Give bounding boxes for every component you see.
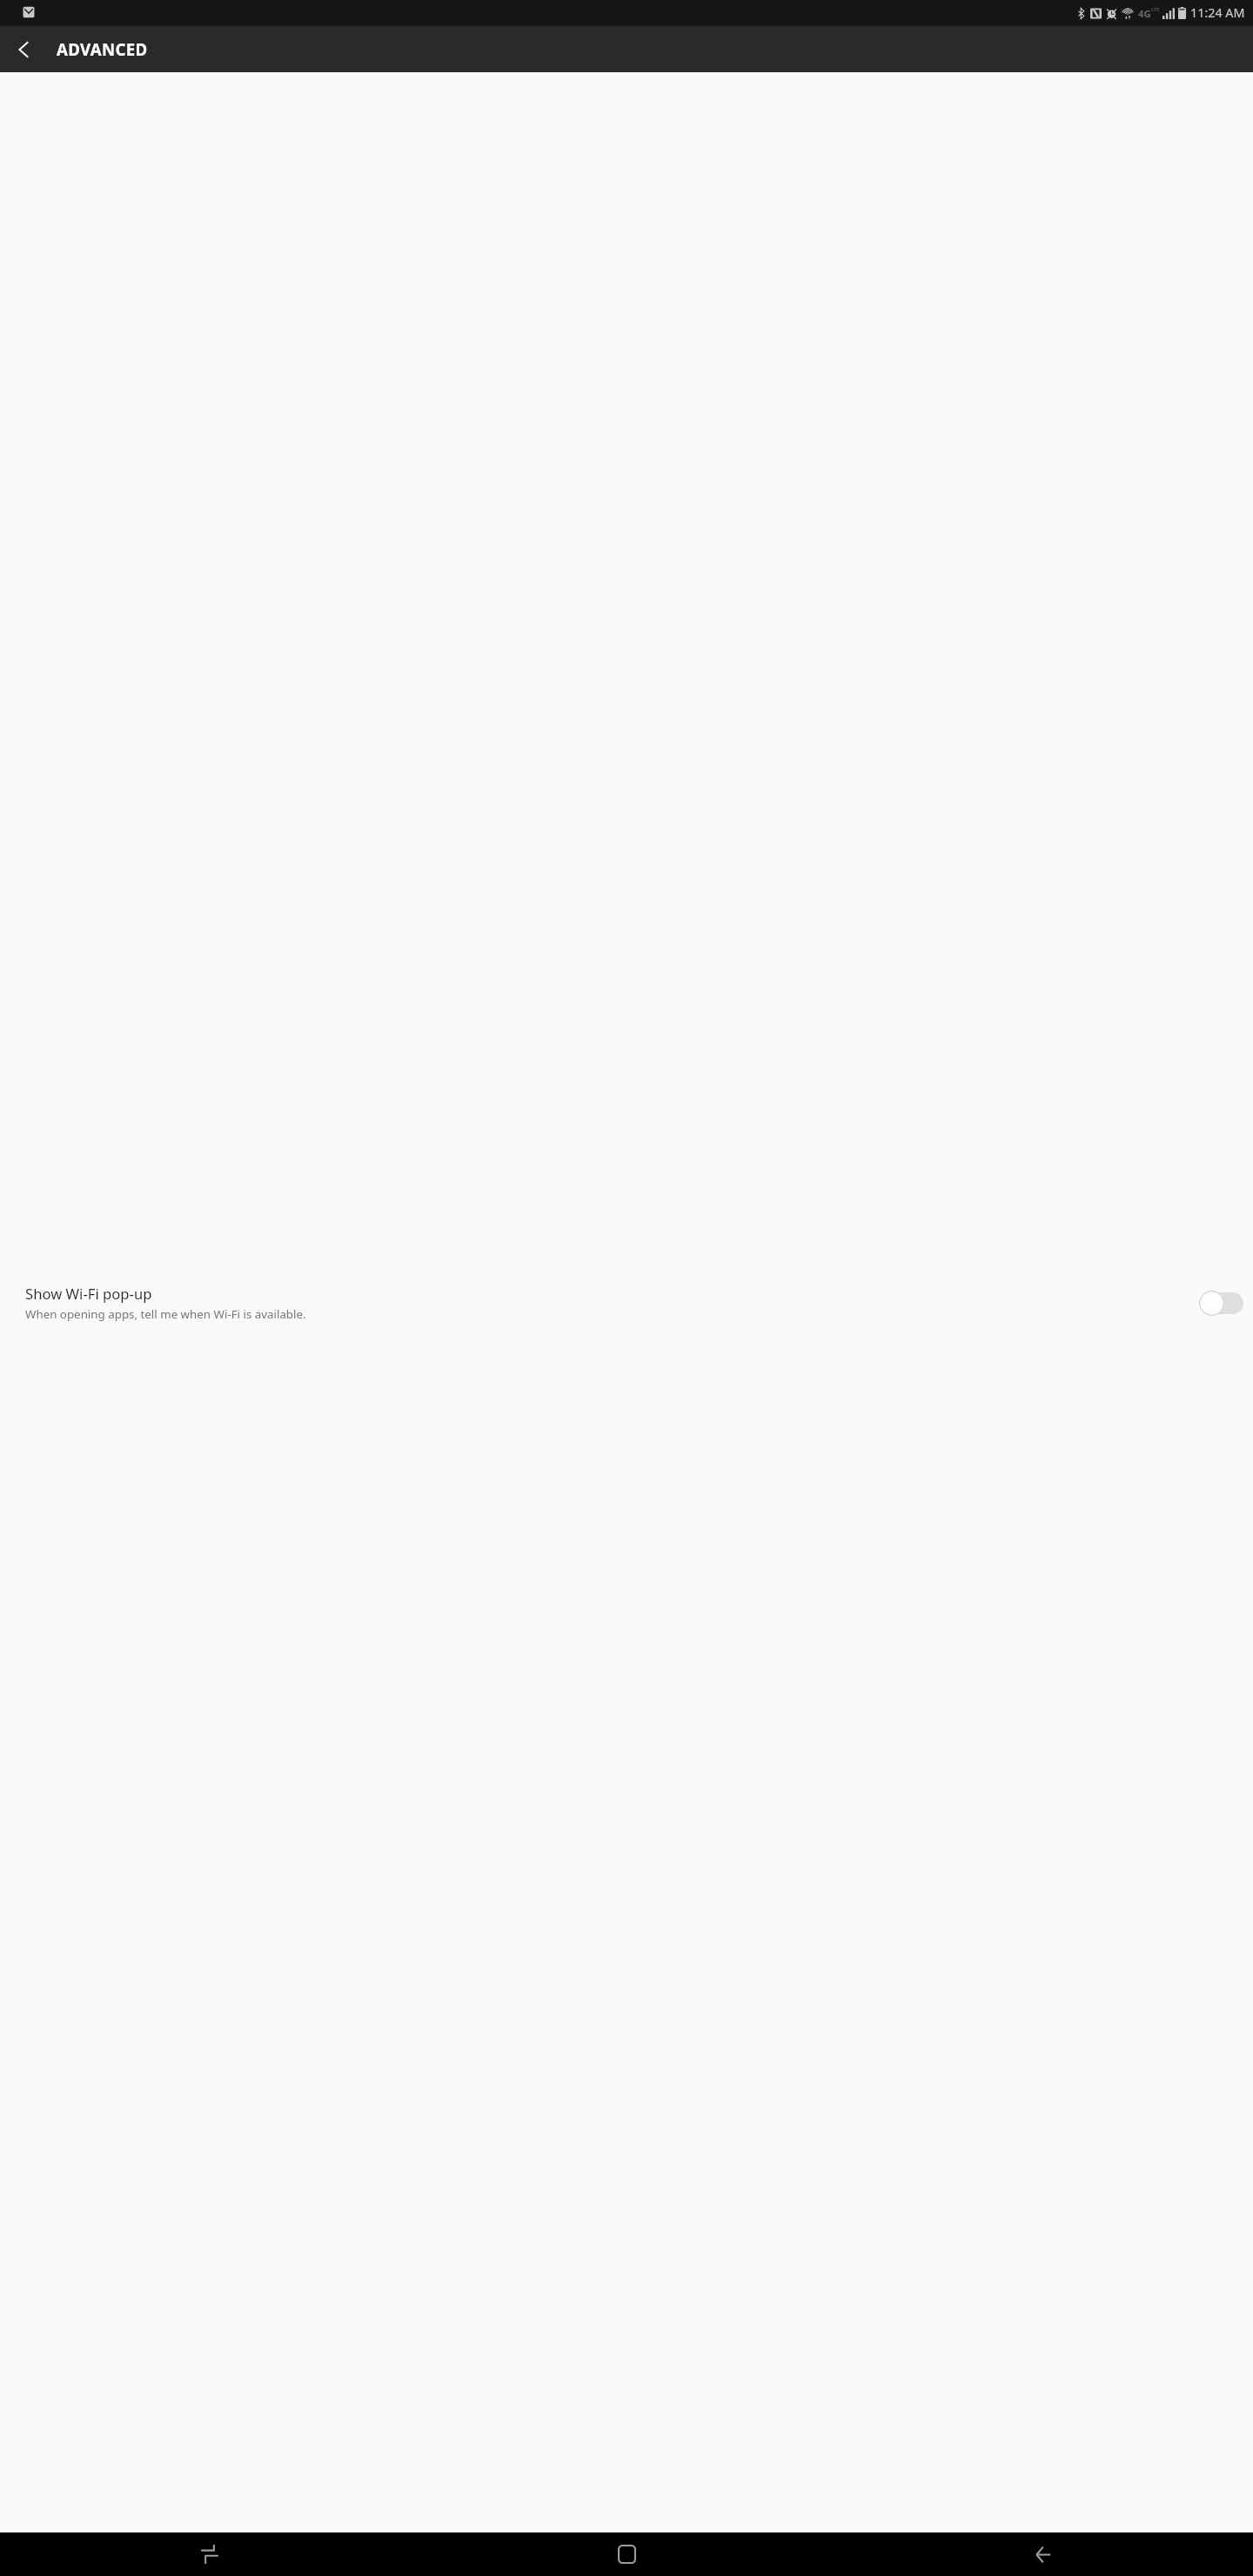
button[interactable]: Back bbox=[1015, 2532, 1074, 2576]
button[interactable]: Home bbox=[598, 2532, 656, 2576]
button[interactable]: Show Wi-Fi pop-up bbox=[0, 72, 1253, 2532]
staticText: ADVANCED bbox=[57, 38, 148, 60]
button[interactable]: Toggle off bbox=[1199, 1290, 1243, 1316]
staticText: LTE bbox=[1151, 6, 1160, 13]
button[interactable]: Recent apps bbox=[180, 2532, 238, 2576]
staticText: 4G bbox=[1138, 7, 1151, 20]
staticText: When opening apps, tell me when Wi-Fi is… bbox=[25, 1306, 306, 1322]
button[interactable]: Navigate up bbox=[6, 32, 41, 67]
staticText: Show Wi-Fi pop-up bbox=[25, 1284, 152, 1304]
staticText: 11:24 AM bbox=[1190, 4, 1245, 22]
